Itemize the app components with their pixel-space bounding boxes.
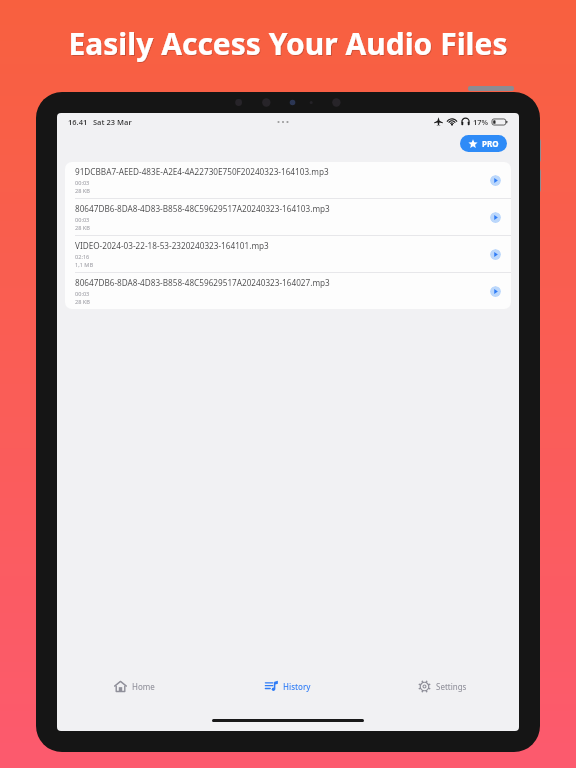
button[interactable]: Play bbox=[490, 249, 501, 260]
staticText: Sat 23 Mar bbox=[93, 117, 132, 127]
button[interactable]: 80647DB6-8DA8-4D83-B858-48C59629517A2024… bbox=[65, 273, 511, 309]
staticText: VIDEO-2024-03-22-18-53-2320240323-164101… bbox=[75, 240, 269, 251]
staticText: Easily Access Your Audio Files bbox=[68, 23, 508, 64]
staticText: Easily Access Your Audio Files bbox=[69, 24, 509, 65]
button[interactable]: 91DCBBA7-AEED-483E-A2E4-4A22730E750F2024… bbox=[65, 162, 511, 198]
staticText: 00:03 bbox=[75, 290, 90, 298]
staticText: 80647DB6-8DA8-4D83-B858-48C59629517A2024… bbox=[75, 277, 330, 288]
staticText: 17% bbox=[473, 117, 489, 127]
button[interactable]: History bbox=[211, 671, 365, 701]
button[interactable]: PRO bbox=[460, 135, 507, 152]
staticText: 28 KB bbox=[75, 298, 90, 306]
button[interactable]: Settings bbox=[365, 671, 519, 701]
staticText: 00:03 bbox=[75, 179, 90, 187]
button[interactable]: Play bbox=[490, 286, 501, 297]
staticText: PRO bbox=[482, 138, 499, 149]
staticText: 28 KB bbox=[75, 187, 90, 195]
button[interactable]: Home bbox=[57, 671, 211, 701]
button[interactable]: VIDEO-2024-03-22-18-53-2320240323-164101… bbox=[65, 236, 511, 272]
button[interactable]: 80647DB6-8DA8-4D83-B858-48C59629517A2024… bbox=[65, 199, 511, 235]
staticText: History bbox=[283, 681, 311, 692]
staticText: Home bbox=[132, 681, 155, 692]
staticText: 28 KB bbox=[75, 224, 90, 232]
staticText: 16.41 bbox=[68, 117, 88, 127]
staticText: 02:16 bbox=[75, 253, 90, 261]
staticText: 80647DB6-8DA8-4D83-B858-48C59629517A2024… bbox=[75, 203, 330, 214]
staticText: 1,1 MB bbox=[75, 261, 94, 269]
staticText: Settings bbox=[436, 681, 467, 692]
staticText: 00:03 bbox=[75, 216, 90, 224]
button[interactable]: Play bbox=[490, 212, 501, 223]
staticText: 91DCBBA7-AEED-483E-A2E4-4A22730E750F2024… bbox=[75, 166, 329, 177]
button[interactable]: Play bbox=[490, 175, 501, 186]
